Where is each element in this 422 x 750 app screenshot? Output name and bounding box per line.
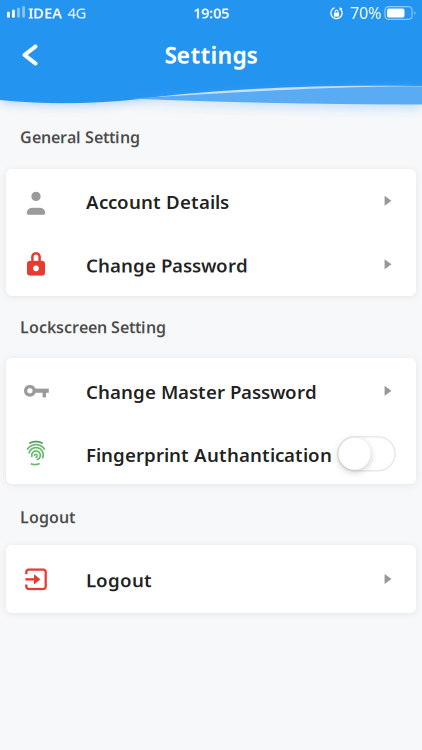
staticText: Change Master Password [86,379,317,404]
button[interactable]: Logout [6,545,416,613]
button[interactable]: Account Details [6,169,416,233]
staticText: Logout [20,506,75,528]
staticText: Change Password [86,253,248,278]
staticText: Logout [86,568,152,592]
staticText: Lockscreen Setting [20,316,166,338]
button[interactable]: Change Master Password [6,359,416,423]
staticText: 4G [67,3,86,23]
staticText: General Setting [20,126,140,148]
button[interactable]: Change Password [6,233,416,296]
staticText: Account Details [86,189,229,214]
staticText: IDEA [28,3,62,23]
button[interactable]: Fingerprint Authantication [6,422,416,486]
staticText: 19:05 [193,3,229,23]
staticText: Fingerprint Authantication [86,442,332,467]
staticText: 70% [350,2,381,23]
staticText: Settings [164,40,257,70]
button[interactable]: Back [8,33,52,77]
